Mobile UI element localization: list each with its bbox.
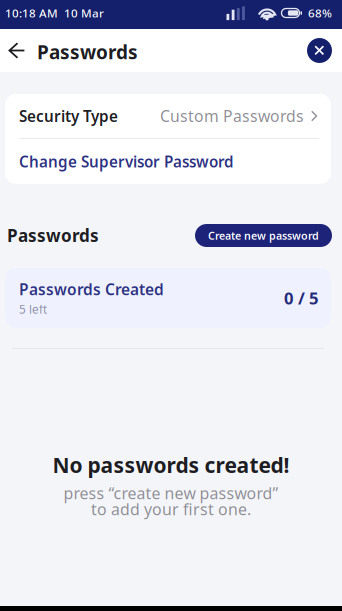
staticText: 68% bbox=[308, 5, 332, 21]
staticText: 5 left bbox=[19, 301, 47, 317]
button[interactable]: Create new password bbox=[195, 224, 332, 247]
staticText: to add your first one. bbox=[91, 498, 251, 520]
staticText: No passwords created! bbox=[52, 451, 289, 479]
button[interactable]: Security Type bbox=[5, 94, 331, 138]
staticText: 0 / 5 bbox=[284, 287, 319, 309]
staticText: press “create new password” bbox=[63, 482, 278, 504]
button[interactable]: Close bbox=[307, 38, 332, 63]
staticText: Custom Passwords bbox=[160, 106, 304, 126]
staticText: 10:18 AM 10 Mar bbox=[5, 5, 104, 21]
staticText: Security Type bbox=[19, 106, 118, 126]
button[interactable]: Change Supervisor Password bbox=[5, 139, 331, 184]
staticText: Passwords Created bbox=[19, 279, 164, 299]
staticText: Passwords bbox=[7, 224, 99, 247]
staticText: Create new password bbox=[208, 228, 319, 243]
staticText: Change Supervisor Password bbox=[19, 151, 234, 172]
button[interactable]: Back bbox=[4, 29, 29, 72]
staticText: Passwords bbox=[37, 39, 138, 64]
